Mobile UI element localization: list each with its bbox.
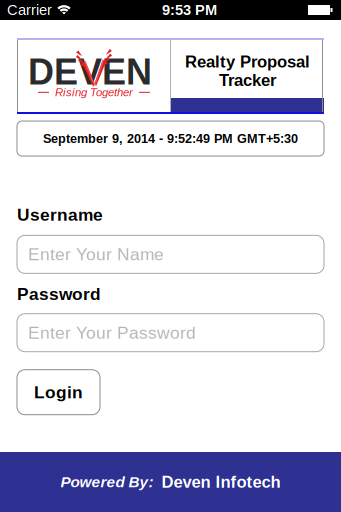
button[interactable]: Login <box>17 370 100 415</box>
staticText: September 9, 2014 - 9:52:49 PM GMT+5:30 <box>43 131 298 146</box>
staticText: Password <box>17 284 101 304</box>
staticText: 9:53 PM <box>162 2 217 18</box>
staticText: DEVEN <box>28 52 152 92</box>
staticText: Rising Together <box>55 86 133 99</box>
staticText: Enter Your Name <box>28 245 164 264</box>
staticText: Realty Proposal <box>185 52 310 71</box>
staticText: Powered By: <box>60 473 153 490</box>
staticText: Carrier <box>7 2 52 18</box>
staticText: Login <box>34 382 83 402</box>
staticText: Enter Your Password <box>28 323 196 342</box>
staticText: Tracker <box>219 71 276 90</box>
staticText: Username <box>17 205 103 224</box>
staticText: Deven Infotech <box>161 473 280 491</box>
